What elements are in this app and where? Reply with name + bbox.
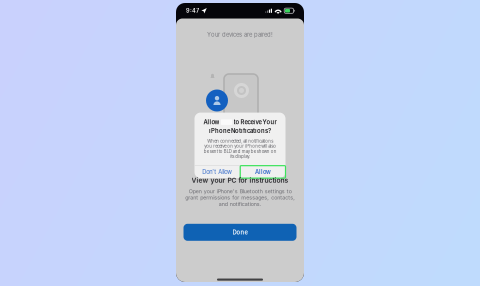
staticText: to Receive Your (234, 119, 277, 126)
staticText: Your devices are paired! (207, 31, 273, 38)
staticText: Done (232, 229, 247, 236)
staticText: Allow (203, 119, 219, 126)
staticText: Don't Allow (202, 168, 232, 175)
staticText: iPhone Notifications? (209, 127, 271, 134)
staticText: View your PC for instructions (191, 176, 288, 184)
button[interactable]: Allow (240, 166, 285, 178)
staticText: Allow (255, 168, 271, 175)
staticText: 9:47 (186, 7, 199, 14)
staticText: When connected, all notifications you re… (203, 138, 276, 159)
staticText: Open your iPhone's Bluetooth settings to… (185, 188, 295, 207)
button[interactable]: Don't Allow (194, 166, 240, 178)
button[interactable]: Done (183, 224, 296, 241)
